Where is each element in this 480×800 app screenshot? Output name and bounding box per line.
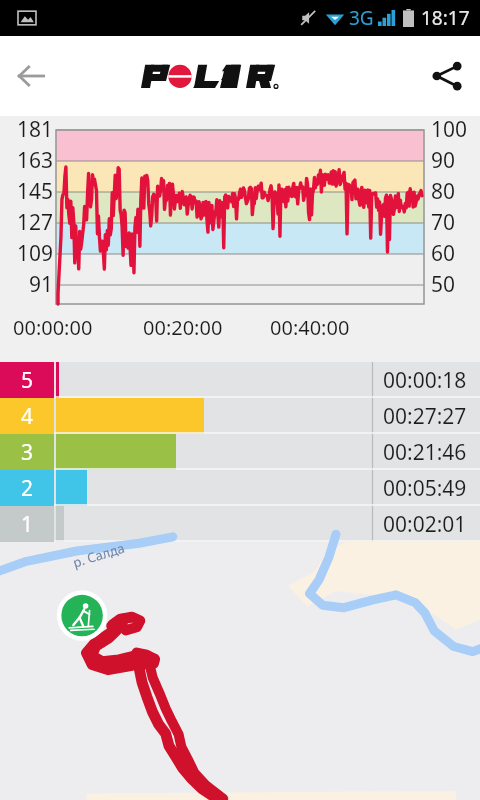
staticText: р. Салда [70,538,127,571]
button[interactable]: Route map [0,542,480,800]
staticText: 80 [431,177,456,206]
staticText: 00:02:01 [383,510,467,539]
staticText: 18:17 [421,5,470,31]
button[interactable]: 2 [0,470,480,506]
staticText: 163 [0,146,53,175]
staticText: 5 [21,366,34,395]
staticText: 145 [0,177,53,206]
button[interactable]: 3 [0,434,480,470]
staticText: 181 [0,115,53,144]
button[interactable]: 4 [0,398,480,434]
staticText: 4 [21,402,34,431]
button[interactable]: Share [414,43,480,109]
staticText: 109 [0,239,53,268]
staticText: 91 [0,270,53,299]
staticText: 00:20:00 [143,314,223,341]
staticText: 1 [21,510,34,539]
button[interactable]: 5 [0,362,480,398]
staticText: 3 [21,438,34,467]
staticText: 00:05:49 [383,474,467,503]
staticText: 100 [431,115,468,144]
staticText: 3G [349,5,374,31]
button[interactable]: 1 [0,506,480,542]
staticText: 00:21:46 [383,438,467,467]
staticText: 127 [0,208,53,237]
staticText: 60 [431,239,456,268]
staticText: 90 [431,146,456,175]
staticText: 70 [431,208,456,237]
button[interactable]: Back [0,45,62,107]
staticText: 50 [431,270,456,299]
staticText: 00:27:27 [383,402,467,431]
staticText: 00:00:00 [13,314,93,341]
staticText: 00:40:00 [270,314,350,341]
staticText: 00:00:18 [383,366,467,395]
staticText: 2 [21,474,34,503]
